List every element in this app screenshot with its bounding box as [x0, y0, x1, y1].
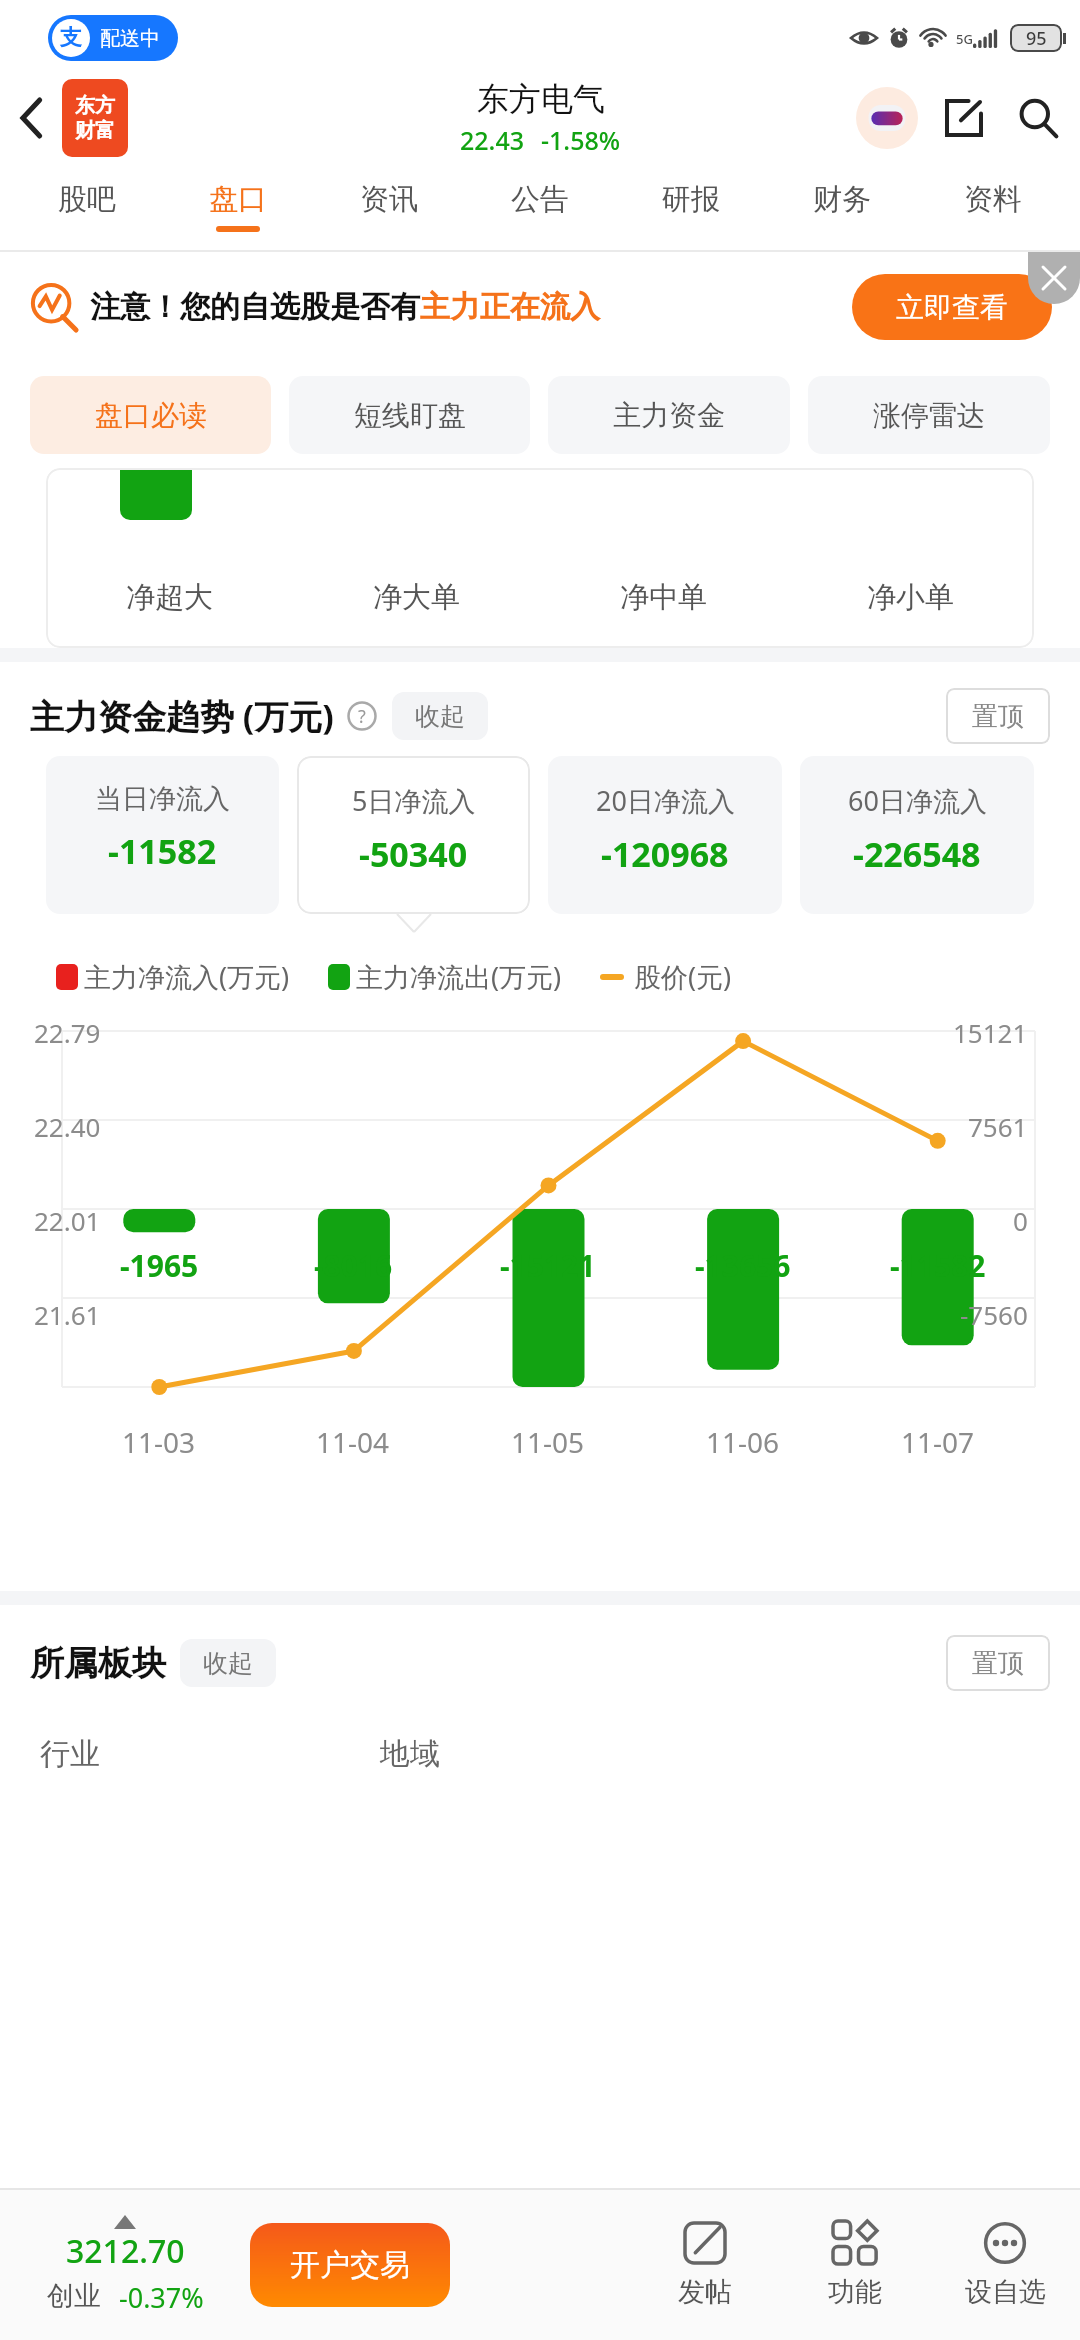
- button[interactable]: Help: [346, 700, 378, 732]
- button[interactable]: 置顶: [946, 1635, 1050, 1691]
- button[interactable]: 发帖: [650, 2221, 760, 2309]
- staticText: -13656: [695, 1245, 791, 1286]
- staticText: 资讯: [360, 181, 418, 218]
- staticText: 11-06: [706, 1423, 780, 1461]
- staticText: 盘口: [209, 181, 267, 218]
- staticText: 支: [60, 24, 82, 52]
- button[interactable]: 置顶: [946, 688, 1050, 744]
- button[interactable]: 净超大: [46, 468, 1034, 648]
- staticText: 置顶: [972, 700, 1024, 733]
- staticText: 净中单: [620, 579, 707, 616]
- staticText: 研报: [662, 181, 720, 218]
- staticText: -226548: [853, 831, 981, 877]
- staticText: -50340: [359, 831, 468, 877]
- staticText: 立即查看: [896, 290, 1008, 325]
- button[interactable]: 资讯: [313, 160, 464, 252]
- button[interactable]: 设自选: [950, 2221, 1060, 2309]
- staticText: 开户交易: [290, 2246, 410, 2284]
- staticText: -1965: [120, 1245, 199, 1286]
- staticText: ?: [358, 704, 366, 729]
- staticText: 60日净流入: [848, 782, 987, 819]
- staticText: 盘口必读: [95, 398, 207, 433]
- staticText: 财富: [75, 118, 115, 143]
- staticText: 净小单: [867, 579, 954, 616]
- staticText: 5日净流入: [352, 782, 476, 819]
- button[interactable]: 盘口: [162, 160, 313, 252]
- staticText: 设自选: [965, 2275, 1046, 2309]
- staticText: 财务: [813, 181, 871, 218]
- staticText: -1.58%: [541, 123, 621, 157]
- button[interactable]: 收起: [392, 692, 488, 740]
- staticText: 置顶: [972, 1647, 1024, 1680]
- staticText: 短线盯盘: [354, 398, 466, 433]
- staticText: 功能: [828, 2275, 882, 2309]
- button[interactable]: 盘口必读: [30, 376, 271, 454]
- staticText: 股价(元): [634, 958, 732, 995]
- staticText: 公告: [511, 181, 569, 218]
- staticText: 11-07: [901, 1423, 975, 1461]
- staticText: 配送中: [100, 26, 160, 51]
- button[interactable]: 主力资金: [548, 376, 790, 454]
- staticText: 地域: [380, 1735, 440, 1773]
- button[interactable]: 当日净流入: [46, 756, 279, 914]
- staticText: -15121: [500, 1245, 596, 1286]
- button[interactable]: 收起: [180, 1639, 276, 1687]
- staticText: 净超大: [126, 579, 213, 616]
- staticText: 东方电气: [477, 79, 605, 119]
- staticText: -7560: [960, 1297, 1028, 1332]
- button[interactable]: Share: [936, 90, 992, 146]
- staticText: 行业: [40, 1735, 100, 1773]
- button[interactable]: 5日净流入: [297, 756, 530, 914]
- staticText: 当日净流入: [95, 782, 230, 816]
- button[interactable]: Search: [1010, 90, 1066, 146]
- button[interactable]: 研报: [615, 160, 766, 252]
- staticText: 东方: [75, 93, 115, 118]
- staticText: 20日净流入: [596, 782, 735, 819]
- button[interactable]: 开户交易: [250, 2223, 450, 2307]
- staticText: 主力净流入(万元): [84, 958, 290, 995]
- staticText: -11582: [108, 828, 217, 874]
- staticText: 22.40: [34, 1109, 101, 1144]
- staticText: 21.61: [34, 1297, 101, 1332]
- button[interactable]: Close: [1028, 252, 1080, 304]
- button[interactable]: 20日净流入: [548, 756, 782, 914]
- staticText: 发帖: [678, 2275, 732, 2309]
- button[interactable]: 财务: [766, 160, 917, 252]
- button[interactable]: 东方: [62, 79, 128, 157]
- button[interactable]: 支: [48, 15, 178, 61]
- button[interactable]: 公告: [464, 160, 615, 252]
- staticText: 净大单: [373, 579, 460, 616]
- staticText: 95: [1026, 26, 1047, 51]
- staticText: 22.79: [34, 1015, 101, 1050]
- staticText: 所属板块: [30, 1642, 166, 1685]
- button[interactable]: Back: [4, 88, 60, 148]
- staticText: -120968: [601, 831, 729, 877]
- staticText: 主力资金: [613, 398, 725, 433]
- button[interactable]: 短线盯盘: [289, 376, 530, 454]
- button[interactable]: 资料: [917, 160, 1068, 252]
- staticText: 5G: [956, 30, 973, 48]
- button[interactable]: 注意！您的自选股是否有: [0, 252, 1080, 362]
- staticText: 主力正在流入: [420, 288, 600, 326]
- staticText: 11-03: [122, 1423, 196, 1461]
- button[interactable]: 股吧: [12, 160, 162, 252]
- button[interactable]: 功能: [800, 2221, 910, 2309]
- staticText: -0.37%: [119, 2279, 204, 2316]
- button[interactable]: 60日净流入: [800, 756, 1034, 914]
- staticText: 股吧: [58, 181, 116, 218]
- button[interactable]: Assistant: [856, 87, 918, 149]
- staticText: 22.43: [460, 123, 525, 157]
- staticText: 创业: [47, 2279, 101, 2313]
- staticText: 资料: [964, 181, 1022, 218]
- button[interactable]: 涨停雷达: [808, 376, 1050, 454]
- staticText: 主力资金趋势 (万元): [30, 693, 334, 739]
- button[interactable]: 立即查看: [852, 274, 1052, 340]
- staticText: 收起: [203, 1648, 253, 1679]
- staticText: 主力净流出(万元): [356, 958, 562, 995]
- staticText: -11582: [890, 1245, 986, 1286]
- staticText: 15121: [953, 1015, 1028, 1050]
- button[interactable]: 3212.70: [0, 2215, 250, 2316]
- staticText: 收起: [415, 701, 465, 732]
- staticText: 11-04: [316, 1423, 390, 1461]
- staticText: 22.01: [34, 1203, 101, 1238]
